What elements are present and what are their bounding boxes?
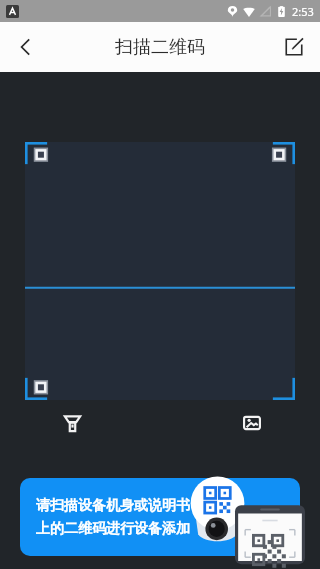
button[interactable]: 请扫描设备机身或说明书: [20, 478, 300, 556]
staticText: 2:53: [292, 4, 314, 19]
staticText: 上的二维码进行设备添加: [36, 520, 190, 538]
staticText: 请扫描设备机身或说明书: [36, 497, 190, 515]
button[interactable]: Back: [4, 25, 48, 69]
button[interactable]: Flashlight: [55, 406, 89, 440]
button[interactable]: Pick image from gallery: [235, 406, 269, 440]
button[interactable]: Edit: [274, 27, 314, 67]
staticText: 扫描二维码: [115, 36, 205, 59]
